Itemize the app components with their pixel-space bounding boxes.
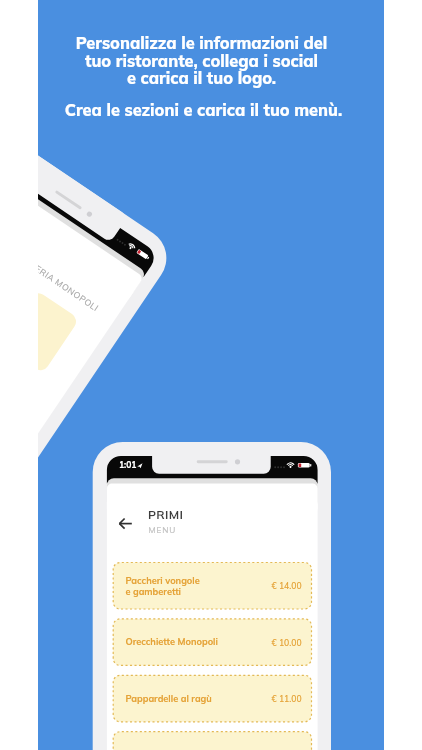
button[interactable] [0, 0, 422, 750]
